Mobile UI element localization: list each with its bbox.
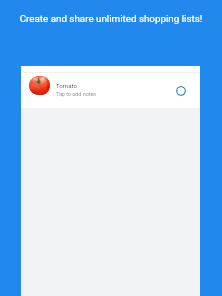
staticText: Tomato bbox=[56, 82, 77, 89]
staticText: Tap to add notes bbox=[56, 91, 97, 97]
button[interactable]: Mark Tomato as bought bbox=[171, 81, 191, 101]
button[interactable]: Tomato bbox=[21, 66, 200, 108]
staticText: Create and share unlimited shopping list… bbox=[0, 13, 222, 24]
